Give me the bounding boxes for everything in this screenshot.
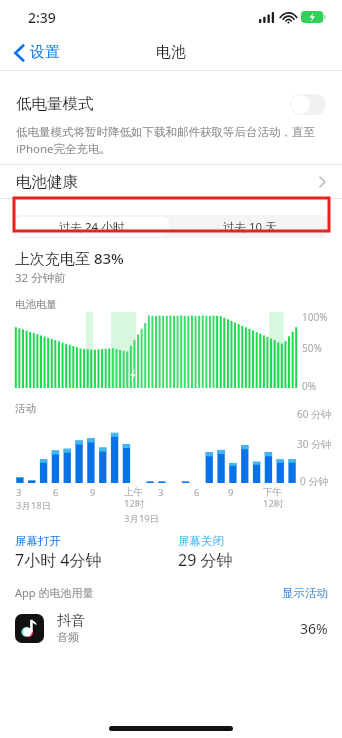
staticText: App 的电池用量 xyxy=(15,585,94,600)
staticText: 3 xyxy=(158,486,164,499)
staticText: 显示活动 xyxy=(282,586,328,600)
staticText: 电池电量 xyxy=(15,298,57,311)
staticText: 活动 xyxy=(15,402,36,415)
staticText: 50% xyxy=(302,341,322,355)
staticText: 3月19日 xyxy=(124,512,160,525)
staticText: 3 xyxy=(16,486,22,499)
staticText: 2:39 xyxy=(28,8,56,27)
staticText: 6 xyxy=(53,486,59,499)
button[interactable]: 低电量模式 xyxy=(0,83,342,125)
button[interactable]: 抖音 xyxy=(0,606,342,650)
staticText: 屏幕关闭 xyxy=(178,534,224,548)
staticText: 29 分钟 xyxy=(178,549,233,571)
staticText: 0% xyxy=(302,379,317,393)
button[interactable]: 显示活动 xyxy=(282,586,328,600)
staticText: 36% xyxy=(300,619,328,638)
staticText: 100% xyxy=(302,310,328,324)
staticText: 电池 xyxy=(156,43,186,62)
button[interactable]: 过去 10 天 xyxy=(171,215,329,238)
staticText: 30 分钟 xyxy=(297,437,332,451)
staticText: 屏幕打开 xyxy=(15,534,61,548)
staticText: 电池健康 xyxy=(16,172,78,192)
staticText: 音频 xyxy=(57,630,79,644)
staticText: 6 xyxy=(194,486,200,499)
staticText: 60 分钟 xyxy=(297,407,332,421)
button[interactable]: 设置 xyxy=(10,39,64,66)
button[interactable]: 电池健康 xyxy=(0,165,342,198)
staticText: 低电量模式 xyxy=(16,94,94,114)
staticText: 9 xyxy=(228,486,234,499)
staticText: 0 分钟 xyxy=(300,474,329,488)
staticText: 低电量模式将暂时降低如下载和邮件获取等后台活动，直至 iPhone完全充电。 xyxy=(16,125,328,156)
button[interactable]: 过去 24 小时 xyxy=(15,217,169,236)
staticText: 下午 12时 xyxy=(263,486,284,510)
staticText: 过去 10 天 xyxy=(223,219,277,235)
staticText: 9 xyxy=(90,486,96,499)
staticText: 上午 12时 xyxy=(124,486,145,510)
staticText: 设置 xyxy=(30,43,60,62)
staticText: 上次充电至 83% xyxy=(15,248,124,268)
staticText: 32 分钟前 xyxy=(15,270,66,286)
staticText: 7小时 4分钟 xyxy=(15,549,102,571)
staticText: 3月18日 xyxy=(16,499,52,512)
staticText: 抖音 xyxy=(57,612,85,630)
staticText: 过去 24 小时 xyxy=(59,219,125,235)
